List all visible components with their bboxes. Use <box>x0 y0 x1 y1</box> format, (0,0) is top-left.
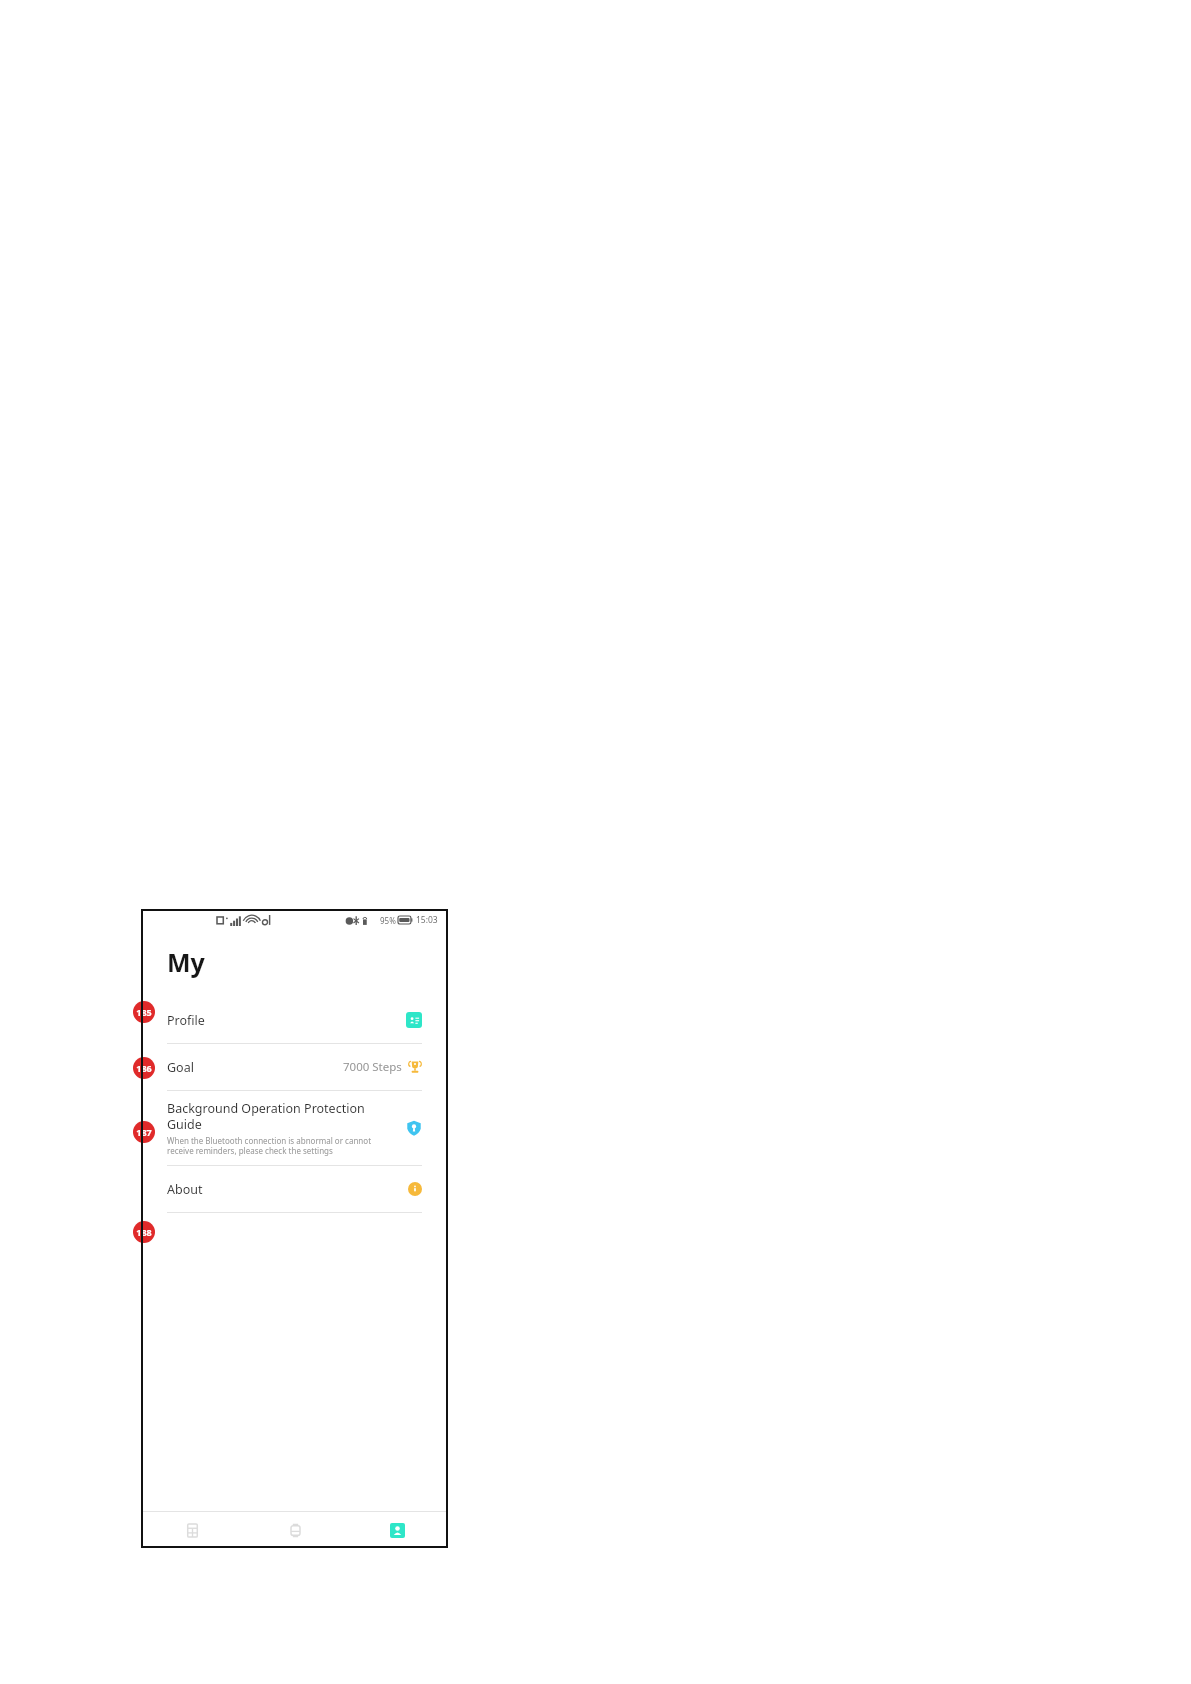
staticText: 95% <box>380 915 396 926</box>
staticText: 7000 Steps <box>343 1059 402 1075</box>
other: Goal trophy <box>408 1060 422 1074</box>
button[interactable]: Background Operation Protection Guide <box>141 1091 448 1166</box>
staticText: 188 <box>136 1226 152 1238</box>
other: Protection guide <box>406 1120 422 1136</box>
staticText: 185 <box>136 1006 152 1018</box>
button[interactable]: My <box>346 1512 448 1548</box>
button[interactable]: About <box>141 1166 448 1213</box>
staticText: About <box>167 1181 203 1198</box>
staticText: 15:03 <box>416 914 438 926</box>
other: About <box>408 1182 422 1196</box>
button[interactable]: Goal <box>141 1044 448 1091</box>
staticText: My <box>167 945 205 979</box>
staticText: When the Bluetooth connection is abnorma… <box>167 1135 398 1156</box>
button[interactable]: Device <box>244 1512 346 1548</box>
button[interactable]: Profile <box>141 997 448 1044</box>
button[interactable]: Records <box>141 1512 244 1548</box>
staticText: Background Operation Protection Guide <box>167 1100 398 1132</box>
staticText: Profile <box>167 1012 205 1029</box>
staticText: Goal <box>167 1059 194 1076</box>
other: Profile <box>406 1012 422 1028</box>
staticText: 187 <box>136 1126 152 1138</box>
staticText: 186 <box>136 1062 152 1074</box>
